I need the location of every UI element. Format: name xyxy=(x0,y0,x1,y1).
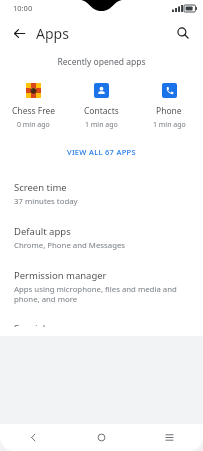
staticText: 37 minutes today xyxy=(14,196,78,207)
staticText: VIEW ALL 67 APPS xyxy=(67,147,136,157)
staticText: Chrome, Phone and Messages xyxy=(14,240,126,251)
staticText: Default apps xyxy=(14,225,71,238)
staticText: Chess Free xyxy=(12,105,56,117)
button[interactable]: Contacts xyxy=(67,83,135,130)
button[interactable]: Search xyxy=(170,20,196,46)
button[interactable]: Default apps xyxy=(0,216,203,260)
button[interactable]: Screen time xyxy=(0,172,203,216)
staticText: Phone xyxy=(156,105,182,117)
button[interactable]: Recent apps xyxy=(135,424,203,451)
button[interactable]: Phone xyxy=(135,83,203,130)
staticText: 0 min ago xyxy=(17,120,50,130)
button[interactable]: Permission manager xyxy=(0,260,203,313)
staticText: 10:00 xyxy=(13,3,33,13)
staticText: 1 min ago xyxy=(153,120,186,130)
staticText: Contacts xyxy=(84,105,119,117)
button[interactable]: Chess Free xyxy=(0,83,67,130)
staticText: Apps using microphone, files and media a… xyxy=(14,284,189,304)
staticText: Apps xyxy=(36,24,69,43)
staticText: 1 min ago xyxy=(85,120,118,130)
button[interactable]: Home xyxy=(67,424,135,451)
button[interactable]: Back xyxy=(6,20,32,46)
staticText: Screen time xyxy=(14,181,67,194)
staticText: Recently opened apps xyxy=(0,56,203,68)
staticText: Special app access xyxy=(14,322,97,327)
button[interactable]: Special app access xyxy=(0,313,203,336)
staticText: Permission manager xyxy=(14,269,107,282)
button[interactable]: Back xyxy=(0,424,67,451)
button[interactable]: VIEW ALL 67 APPS xyxy=(0,144,203,160)
